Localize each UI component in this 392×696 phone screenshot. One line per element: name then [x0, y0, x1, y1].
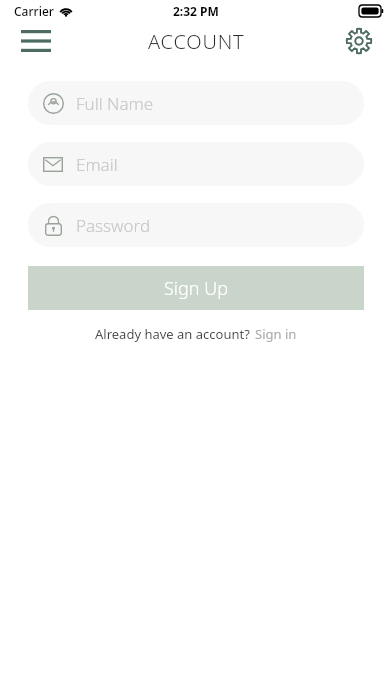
- staticText: ACCOUNT: [148, 28, 245, 55]
- button[interactable]: Menu: [14, 22, 58, 60]
- button[interactable]: Settings: [337, 22, 381, 60]
- button[interactable]: Sign in: [254, 323, 298, 345]
- staticText: Email: [76, 153, 118, 176]
- button[interactable]: Password: [28, 203, 364, 247]
- staticText: Carrier: [14, 3, 54, 19]
- staticText: 2:32 PM: [173, 3, 219, 19]
- button[interactable]: Sign Up: [28, 266, 364, 310]
- button[interactable]: Full Name: [28, 81, 364, 125]
- staticText: Full Name: [76, 92, 154, 115]
- staticText: Sign in: [255, 325, 297, 343]
- button[interactable]: Email: [28, 142, 364, 186]
- staticText: Sign Up: [164, 276, 228, 301]
- staticText: Already have an account?: [95, 325, 250, 343]
- staticText: Password: [76, 214, 151, 237]
